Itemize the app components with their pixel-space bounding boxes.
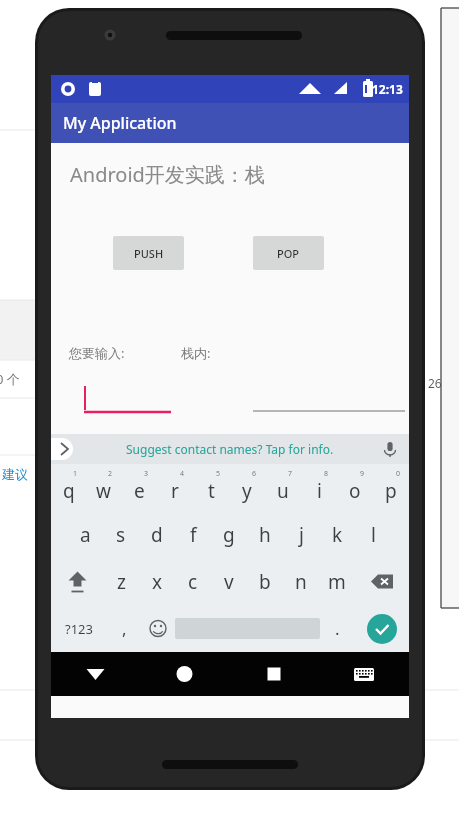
staticText: x: [152, 569, 163, 595]
button[interactable]: 9: [337, 464, 373, 511]
button[interactable]: ?123: [51, 605, 107, 652]
staticText: e: [134, 478, 145, 504]
staticText: h: [259, 522, 271, 548]
staticText: s: [116, 522, 126, 548]
staticText: 1: [73, 469, 78, 479]
button[interactable]: d: [139, 511, 175, 558]
staticText: r: [171, 478, 179, 504]
button[interactable]: Backspace: [355, 558, 409, 605]
button[interactable]: z: [104, 558, 139, 605]
button[interactable]: 0: [373, 464, 409, 511]
button[interactable]: Voice input: [379, 438, 401, 460]
staticText: 建议: [2, 466, 28, 482]
button[interactable]: c: [175, 558, 211, 605]
staticText: ,: [122, 617, 127, 640]
staticText: c: [188, 569, 198, 595]
button[interactable]: 2: [86, 464, 121, 511]
staticText: w: [96, 478, 111, 504]
staticText: My Application: [63, 112, 177, 134]
button[interactable]: Suggest contact names? Tap for info.: [126, 441, 334, 457]
button[interactable]: POP: [253, 236, 324, 270]
staticText: 0 个: [0, 370, 20, 388]
button[interactable]: k: [319, 511, 355, 558]
button[interactable]: Expand suggestions: [51, 438, 73, 460]
button[interactable]: b: [247, 558, 283, 605]
button[interactable]: Recents: [229, 652, 319, 696]
staticText: t: [208, 478, 215, 504]
button[interactable]: .: [320, 605, 354, 652]
staticText: o: [349, 478, 361, 504]
button[interactable]: l: [355, 511, 391, 558]
staticText: z: [117, 569, 126, 595]
staticText: Android开发实践：栈: [70, 161, 265, 188]
button[interactable]: 1: [51, 464, 86, 511]
staticText: n: [295, 569, 307, 595]
button[interactable]: a: [68, 511, 103, 558]
button[interactable]: 7: [265, 464, 301, 511]
button[interactable]: h: [247, 511, 283, 558]
staticText: 12:13: [372, 81, 403, 97]
staticText: p: [385, 478, 397, 504]
staticText: v: [224, 569, 234, 595]
staticText: ?123: [65, 620, 93, 638]
staticText: 5: [216, 469, 221, 479]
staticText: 栈内:: [181, 344, 211, 362]
button[interactable]: 8: [301, 464, 337, 511]
staticText: 4: [180, 469, 185, 479]
staticText: 0: [396, 469, 401, 479]
staticText: y: [242, 478, 252, 504]
button[interactable]: m: [319, 558, 355, 605]
button[interactable]: Keyboard: [319, 652, 409, 696]
staticText: f: [190, 522, 197, 548]
button[interactable]: f: [175, 511, 211, 558]
staticText: i: [317, 478, 322, 504]
staticText: 9: [360, 469, 365, 479]
staticText: 7: [288, 469, 293, 479]
button[interactable]: x: [139, 558, 175, 605]
button[interactable]: PUSH: [113, 236, 184, 270]
button[interactable]: v: [211, 558, 247, 605]
staticText: k: [332, 522, 343, 548]
button[interactable]: n: [283, 558, 319, 605]
staticText: 您要输入:: [69, 344, 125, 362]
staticText: m: [328, 569, 346, 595]
staticText: 3: [144, 469, 149, 479]
staticText: 2: [108, 469, 113, 479]
button[interactable]: 6: [229, 464, 265, 511]
staticText: .: [335, 617, 340, 640]
staticText: g: [223, 522, 235, 548]
staticText: 26: [428, 375, 442, 391]
button[interactable]: Enter: [367, 614, 397, 644]
button[interactable]: Back: [51, 652, 140, 696]
staticText: j: [299, 522, 304, 548]
staticText: POP: [277, 246, 300, 261]
staticText: d: [151, 522, 163, 548]
staticText: PUSH: [134, 246, 164, 261]
staticText: l: [371, 522, 376, 548]
staticText: 6: [252, 469, 257, 479]
staticText: u: [277, 478, 289, 504]
staticText: q: [63, 478, 75, 504]
staticText: a: [80, 522, 91, 548]
button[interactable]: Emoji: [141, 605, 175, 652]
button[interactable]: ,: [107, 605, 141, 652]
button[interactable]: 3: [121, 464, 157, 511]
button[interactable]: Home: [140, 652, 229, 696]
button[interactable]: 5: [193, 464, 229, 511]
button[interactable]: 4: [157, 464, 193, 511]
button[interactable]: j: [283, 511, 319, 558]
button[interactable]: g: [211, 511, 247, 558]
staticText: b: [259, 569, 271, 595]
button[interactable]: s: [103, 511, 139, 558]
button[interactable]: Shift: [51, 558, 104, 605]
staticText: 8: [324, 469, 329, 479]
